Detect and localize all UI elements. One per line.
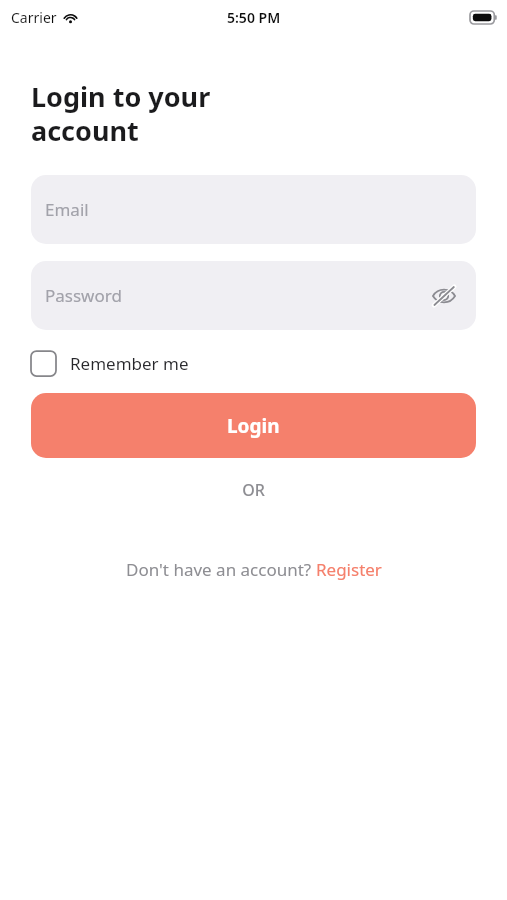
staticText: Login to your account — [31, 78, 211, 149]
staticText: Register — [316, 558, 382, 581]
staticText: Login — [227, 413, 280, 439]
staticText: Password — [45, 284, 122, 307]
staticText: Carrier — [11, 8, 57, 27]
button[interactable]: Remember me — [31, 351, 189, 376]
button[interactable]: Show password — [425, 277, 463, 315]
staticText: Don't have an account? — [126, 558, 316, 581]
staticText: Remember me — [70, 352, 189, 375]
button[interactable]: Register — [316, 558, 382, 581]
button[interactable]: Login — [31, 393, 476, 458]
button[interactable]: Email — [31, 175, 476, 244]
button[interactable]: Password — [31, 261, 476, 330]
staticText: OR — [0, 479, 507, 501]
staticText: 5:50 PM — [227, 8, 281, 27]
staticText: Email — [45, 198, 89, 221]
